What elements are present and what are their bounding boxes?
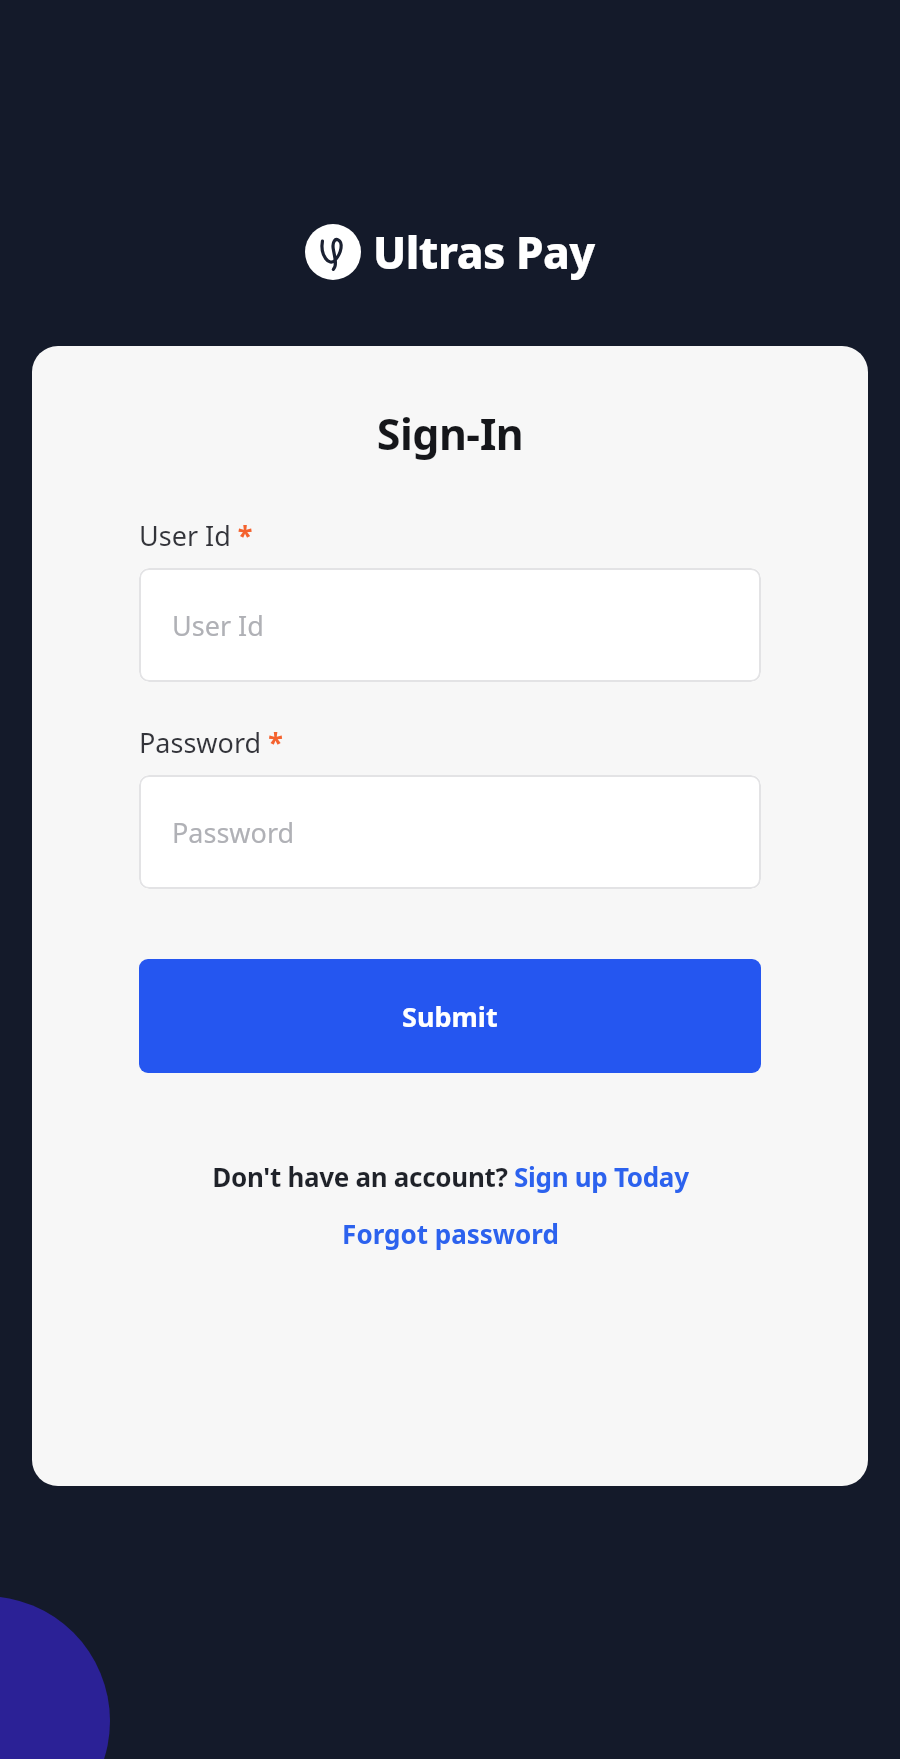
button[interactable]: User Id xyxy=(139,568,761,682)
staticText: Sign-In xyxy=(139,404,761,463)
button[interactable]: Forgot password xyxy=(139,1216,761,1251)
staticText: Password * xyxy=(139,724,283,761)
staticText: Forgot password xyxy=(342,1216,559,1251)
staticText: User Id xyxy=(172,607,264,644)
button[interactable]: Don't have an account? Sign up Today xyxy=(139,1159,761,1194)
staticText: Submit xyxy=(402,998,498,1035)
button[interactable]: Submit xyxy=(139,959,761,1073)
staticText: Password xyxy=(172,814,295,851)
staticText: Don't have an account? Sign up Today xyxy=(212,1159,689,1194)
staticText: Ultras Pay xyxy=(373,222,595,282)
button[interactable]: Password xyxy=(139,775,761,889)
staticText: User Id * xyxy=(139,517,253,554)
